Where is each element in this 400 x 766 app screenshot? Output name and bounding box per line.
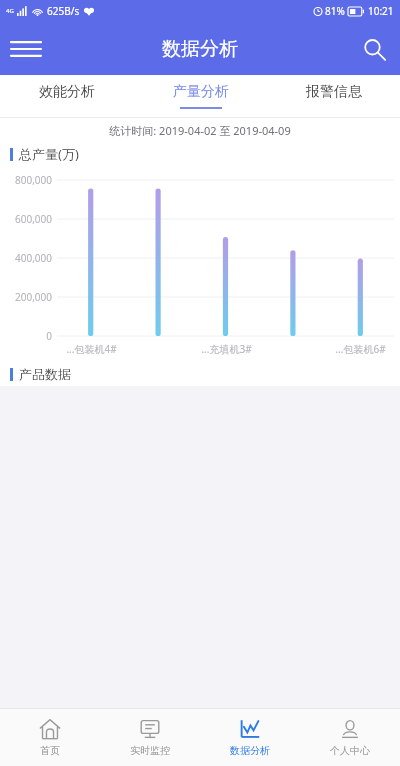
- staticText: 数据分析: [230, 744, 270, 757]
- button[interactable]: Menu: [0, 23, 52, 75]
- button[interactable]: 首页: [0, 709, 100, 766]
- staticText: ...充填机3#: [201, 342, 252, 356]
- staticText: 4G: [6, 7, 14, 15]
- staticText: 0: [46, 329, 52, 343]
- staticText: ...包装机6#: [335, 342, 386, 356]
- button[interactable]: 实时监控: [100, 709, 200, 766]
- staticText: 个人中心: [330, 744, 370, 757]
- staticText: 600,000: [15, 212, 52, 226]
- staticText: 81%: [325, 4, 345, 18]
- staticText: ...包装机4#: [66, 342, 117, 356]
- button[interactable]: 报警信息: [267, 75, 400, 117]
- staticText: 10:21: [368, 4, 394, 18]
- staticText: 首页: [40, 744, 60, 757]
- staticText: 200,000: [15, 290, 52, 304]
- staticText: 效能分析: [39, 83, 95, 101]
- button[interactable]: 个人中心: [300, 709, 400, 766]
- staticText: 800,000: [15, 173, 52, 187]
- staticText: 统计时间: 2019-04-02 至 2019-04-09: [109, 123, 291, 138]
- staticText: 625B/s: [47, 4, 80, 18]
- staticText: 总产量(万): [19, 145, 79, 163]
- staticText: 实时监控: [130, 744, 170, 757]
- staticText: 产品数据: [19, 366, 71, 382]
- staticText: 报警信息: [306, 83, 362, 101]
- staticText: 数据分析: [162, 37, 238, 61]
- staticText: 400,000: [15, 251, 52, 265]
- button[interactable]: 数据分析: [200, 709, 300, 766]
- staticText: 产量分析: [173, 83, 229, 101]
- button[interactable]: 产量分析: [134, 75, 267, 117]
- button[interactable]: Search: [348, 23, 400, 75]
- button[interactable]: 效能分析: [0, 75, 134, 117]
